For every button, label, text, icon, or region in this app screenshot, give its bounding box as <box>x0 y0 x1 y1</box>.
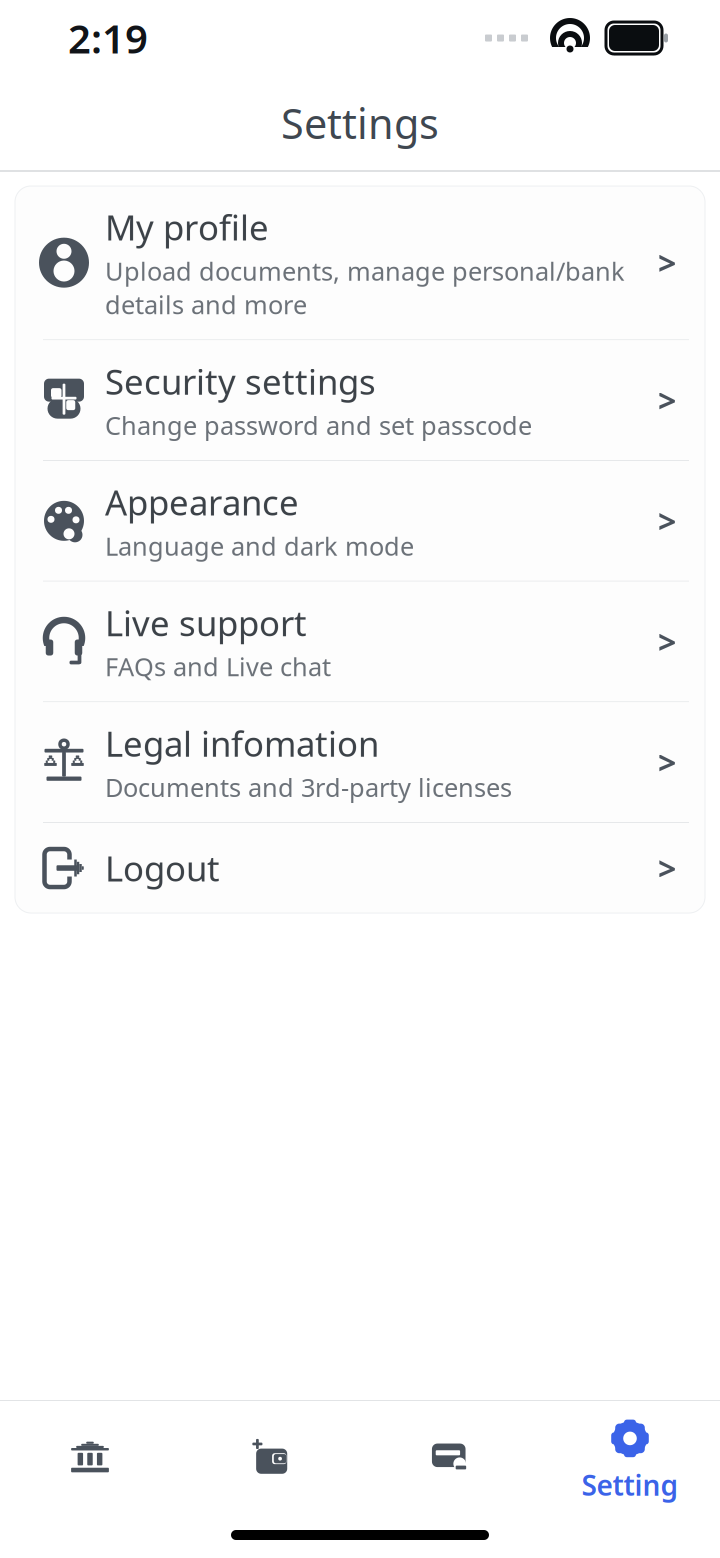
staticText: 2:19 <box>68 11 148 64</box>
staticText: Live support <box>105 600 307 646</box>
staticText: > <box>658 241 676 284</box>
staticText: Legal infomation <box>105 720 379 766</box>
staticText: Settings <box>281 96 439 150</box>
button[interactable]: Cards <box>360 1423 540 1497</box>
button[interactable]: Live support <box>15 582 705 701</box>
staticText: > <box>658 500 676 542</box>
button[interactable]: Accounts <box>0 1423 180 1497</box>
button[interactable]: Add money <box>180 1423 360 1497</box>
button[interactable]: Setting <box>540 1404 720 1516</box>
staticText: Upload documents, manage personal/bank d… <box>105 254 625 321</box>
staticText: Language and dark mode <box>105 529 414 563</box>
staticText: Security settings <box>105 358 376 404</box>
staticText: > <box>658 620 676 663</box>
button[interactable]: Logout <box>15 823 705 913</box>
staticText: Setting <box>581 1466 678 1504</box>
staticText: Appearance <box>105 479 299 525</box>
button[interactable]: Appearance <box>15 461 705 581</box>
staticText: Change password and set passcode <box>105 408 532 442</box>
staticText: > <box>658 379 676 421</box>
staticText: FAQs and Live chat <box>105 650 331 683</box>
button[interactable]: My profile <box>15 186 705 339</box>
staticText: Logout <box>105 845 220 891</box>
button[interactable]: Security settings <box>15 340 705 460</box>
staticText: > <box>658 741 676 783</box>
staticText: Documents and 3rd-party licenses <box>105 770 512 804</box>
staticText: > <box>658 847 676 889</box>
button[interactable]: Legal infomation <box>15 702 705 822</box>
staticText: My profile <box>105 204 269 250</box>
